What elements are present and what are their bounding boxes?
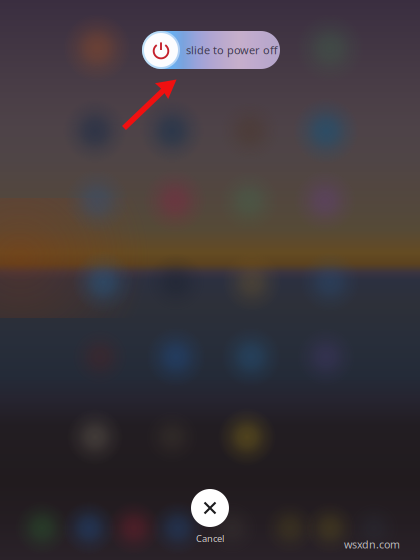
button[interactable]: slide to power off [142,31,280,69]
staticText: wsxdn.com [344,537,400,551]
button[interactable]: Cancel [175,489,245,549]
staticText: slide to power off [186,43,278,57]
staticText: Cancel [196,532,224,545]
